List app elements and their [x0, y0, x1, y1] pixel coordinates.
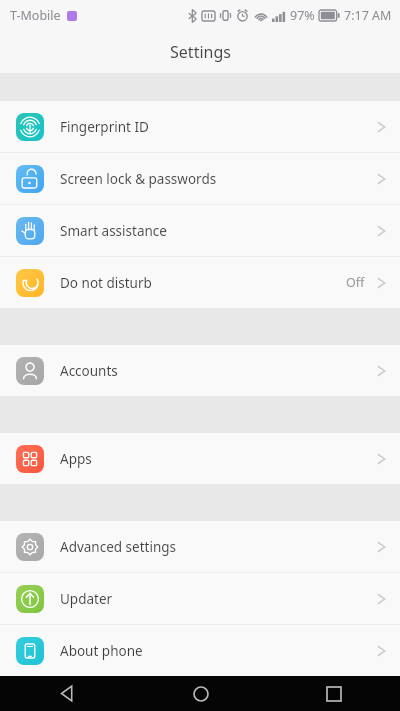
staticText: Off: [346, 274, 365, 291]
button[interactable]: Fingerprint ID: [0, 101, 400, 152]
button[interactable]: About phone: [0, 625, 400, 676]
staticText: Apps: [60, 450, 377, 468]
staticText: 7:17 AM: [344, 7, 392, 24]
staticText: Fingerprint ID: [60, 118, 377, 136]
button[interactable]: Back: [0, 676, 134, 711]
button[interactable]: Apps: [0, 433, 400, 484]
staticText: Accounts: [60, 362, 377, 380]
button[interactable]: Recent apps: [267, 676, 400, 711]
staticText: Advanced settings: [60, 538, 377, 556]
staticText: Settings: [170, 41, 231, 63]
staticText: About phone: [60, 642, 377, 660]
button[interactable]: Advanced settings: [0, 521, 400, 572]
button[interactable]: Smart assistance: [0, 205, 400, 256]
staticText: Updater: [60, 590, 377, 608]
staticText: 97%: [290, 7, 315, 24]
button[interactable]: Home: [134, 676, 267, 711]
button[interactable]: Screen lock & passwords: [0, 153, 400, 204]
staticText: Do not disturb: [60, 274, 346, 292]
staticText: Screen lock & passwords: [60, 170, 377, 188]
button[interactable]: Do not disturb: [0, 257, 400, 308]
staticText: T-Mobile: [10, 7, 61, 24]
button[interactable]: Updater: [0, 573, 400, 624]
button[interactable]: Accounts: [0, 345, 400, 396]
staticText: Smart assistance: [60, 222, 377, 240]
